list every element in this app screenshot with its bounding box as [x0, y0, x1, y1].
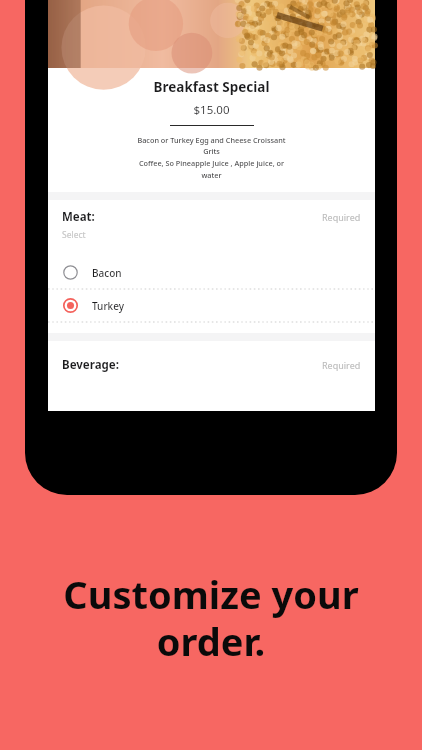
- button[interactable]: Select Bacon: [48, 257, 375, 288]
- staticText: Turkey: [92, 299, 125, 313]
- staticText: Customize your order.: [16, 568, 406, 667]
- staticText: Meat:: [62, 209, 95, 225]
- button[interactable]: Meat:: [48, 209, 375, 225]
- staticText: $15.00: [48, 102, 375, 118]
- staticText: Required: [322, 211, 361, 223]
- button[interactable]: Turkey selected: [48, 290, 375, 321]
- other: Select Bacon: [63, 265, 78, 280]
- staticText: Select: [62, 229, 86, 241]
- staticText: Bacon: [92, 266, 122, 280]
- staticText: Bacon or Turkey Egg and Cheese Croissant…: [56, 135, 367, 181]
- button[interactable]: Beverage:: [48, 357, 375, 373]
- staticText: Required: [322, 359, 361, 371]
- staticText: Beverage:: [62, 357, 119, 373]
- other: Turkey selected: [63, 298, 78, 313]
- staticText: Breakfast Special: [48, 78, 375, 96]
